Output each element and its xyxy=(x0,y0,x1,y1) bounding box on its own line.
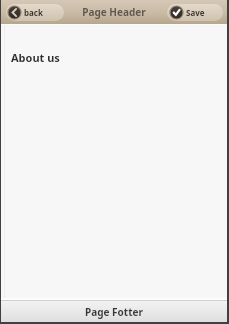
staticText: back xyxy=(24,7,43,18)
button[interactable]: Back xyxy=(6,4,64,21)
staticText: Page Header xyxy=(82,5,146,19)
staticText: Save xyxy=(186,7,205,18)
staticText: About us xyxy=(11,50,60,65)
staticText: Page Fotter xyxy=(85,305,143,319)
button[interactable]: Save xyxy=(167,4,223,21)
button[interactable]: Page Fotter xyxy=(1,301,227,322)
